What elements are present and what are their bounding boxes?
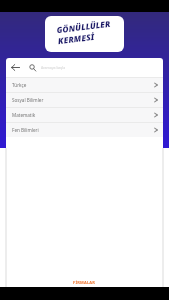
other: Back: [11, 63, 20, 72]
other: Search: [29, 64, 37, 72]
staticText: Fen Bilimleri: [12, 127, 39, 133]
button[interactable]: Back: [6, 58, 163, 77]
staticText: Aramaya başla: [41, 65, 66, 70]
button[interactable]: Matematik: [6, 108, 163, 122]
staticText: Matematik: [12, 112, 36, 118]
button[interactable]: Sosyal Bilimler: [6, 93, 163, 107]
button[interactable]: Fen Bilimleri: [6, 123, 163, 137]
staticText: GÖNÜLLÜLER: [56, 18, 112, 35]
staticText: FİRMALAR: [73, 280, 96, 285]
staticText: KERMESİ: [57, 31, 95, 46]
button[interactable]: GÖNÜLLÜLER: [45, 16, 124, 52]
button[interactable]: Türkçe: [6, 78, 163, 92]
staticText: Sosyal Bilimler: [12, 97, 44, 103]
staticText: Türkçe: [12, 82, 27, 88]
button[interactable]: FİRMALAR: [73, 280, 96, 285]
